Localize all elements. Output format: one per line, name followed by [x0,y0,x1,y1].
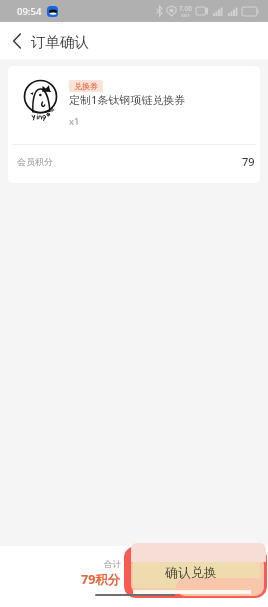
staticText: 79 [242,154,255,169]
staticText: x1 [69,115,80,128]
button[interactable]: Back [2,26,32,56]
staticText: 确认兑换 [165,564,217,580]
staticText: KB/S [181,13,190,18]
staticText: 合计 [104,559,121,570]
staticText: 定制1条钛钢项链兑换券 [69,92,186,107]
staticText: 订单确认 [31,33,89,51]
staticText: 会员积分 [17,156,53,167]
staticText: 兑换券 [74,81,98,91]
staticText: 7.00 [179,4,192,13]
staticText: 09:54 [17,5,42,18]
staticText: 79积分 [81,571,121,588]
button[interactable]: 确认兑换 [124,546,268,601]
